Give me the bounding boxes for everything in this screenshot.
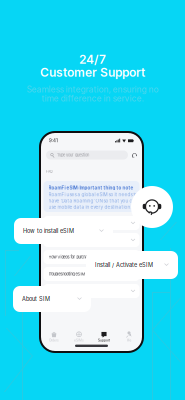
staticText: use mobile data in every destination. xyxy=(48,204,131,210)
staticText: How Videos for purchasing xyxy=(48,255,94,259)
staticText: 9:41 xyxy=(49,138,58,143)
staticText: time difference in service. xyxy=(41,93,143,104)
staticText: Seamless integration, ensuring no xyxy=(26,84,158,95)
button[interactable]: eSIMs xyxy=(66,329,91,345)
staticText: Me xyxy=(126,338,131,342)
staticText: have 'Data Roaming' ON so that you can xyxy=(48,198,138,204)
staticText: Type your question xyxy=(57,153,89,157)
staticText: FAQ xyxy=(46,169,53,174)
staticText: 24/7 xyxy=(79,52,106,67)
staticText: Customer Support xyxy=(40,65,145,80)
staticText: Support xyxy=(98,338,110,342)
staticText: About SIM xyxy=(22,296,50,302)
staticText: RoamFi uses a global eSIM so it needs to xyxy=(48,192,137,197)
button[interactable]: Orders xyxy=(41,329,66,345)
staticText: eSIMs xyxy=(74,338,84,342)
button[interactable]: Me xyxy=(116,329,141,345)
staticText: How to install eSIM xyxy=(23,228,74,234)
button[interactable]: About SIM xyxy=(13,286,91,312)
staticText: Orders xyxy=(49,338,59,342)
button[interactable]: Support xyxy=(91,329,116,345)
staticText: RoamFi eSIM: Important thing to note xyxy=(48,185,133,190)
button[interactable]: Install / Activate eSIM xyxy=(86,251,178,279)
staticText: Troubleshooting eSIM xyxy=(48,272,85,276)
button[interactable]: How to install eSIM xyxy=(14,218,113,244)
button[interactable]: Contact customer support xyxy=(131,186,173,228)
staticText: Install / Activate eSIM xyxy=(95,262,153,268)
